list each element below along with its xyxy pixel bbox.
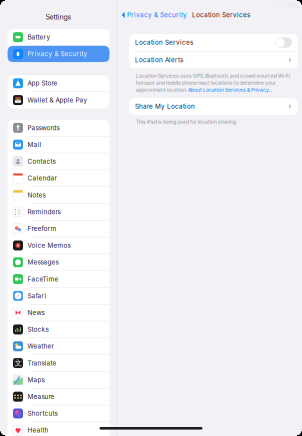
staticText: Notes (27, 191, 45, 199)
staticText: hotspot and mobile phone mast locations … (136, 80, 276, 86)
staticText: Translate (27, 359, 56, 367)
button[interactable]: App Store (7, 75, 109, 92)
button[interactable]: Location Alerts (129, 51, 298, 68)
button[interactable]: Contacts (7, 153, 109, 170)
staticText: Settings (45, 13, 71, 21)
button[interactable]: FaceTime (7, 271, 109, 288)
staticText: FaceTime (27, 275, 58, 283)
staticText: Passwords (27, 124, 59, 132)
button[interactable]: Measure (7, 388, 109, 405)
staticText: Mail (27, 141, 41, 148)
staticText: Voice Memos (27, 242, 70, 249)
staticText: Share My Location (135, 103, 195, 110)
button[interactable]: 文 (7, 355, 109, 372)
staticText: Battery (27, 33, 50, 41)
staticText: approximate location. (136, 87, 188, 93)
staticText: 文 (14, 358, 21, 368)
button[interactable]: About Location Services & Privacy… (188, 87, 272, 93)
staticText: App Store (27, 79, 57, 87)
staticText: Maps (27, 376, 44, 384)
button[interactable]: Privacy & Security (7, 46, 109, 63)
button[interactable]: Calendar (7, 170, 109, 187)
button[interactable]: Passwords (7, 120, 109, 136)
staticText: Weather (27, 342, 53, 350)
button[interactable]: Mail (7, 136, 109, 153)
staticText: Measure (27, 393, 54, 400)
button[interactable]: Stocks (7, 321, 109, 338)
button[interactable]: Privacy & Security (121, 11, 187, 19)
button[interactable]: Notes (7, 187, 109, 204)
staticText: Safari (27, 292, 46, 300)
staticText: Location Services uses GPS, Bluetooth, a… (136, 73, 290, 79)
staticText: Location Services (192, 11, 250, 19)
staticText: Reminders (27, 208, 60, 216)
staticText: Stocks (27, 326, 48, 333)
button[interactable]: Health (7, 422, 109, 436)
staticText: Contacts (27, 158, 55, 165)
button[interactable]: Reminders (7, 204, 109, 220)
button[interactable]: Shortcuts (7, 405, 109, 422)
button[interactable]: Messages (7, 254, 109, 271)
button[interactable]: News (7, 304, 109, 321)
button[interactable]: Weather (7, 338, 109, 355)
button[interactable]: Wallet & Apple Pay (7, 92, 109, 109)
button[interactable]: Voice Memos (7, 237, 109, 254)
button[interactable]: Share My Location (129, 98, 298, 115)
staticText: About Location Services & Privacy… (188, 87, 272, 93)
staticText: Privacy & Security (127, 11, 187, 19)
button[interactable]: Safari (7, 288, 109, 304)
staticText: News (27, 309, 44, 316)
staticText: Health (27, 426, 48, 434)
button[interactable]: Maps (7, 372, 109, 388)
staticText: Shortcuts (27, 410, 57, 417)
button[interactable]: Freeform (7, 220, 109, 237)
staticText: Privacy & Security (27, 50, 87, 58)
staticText: Freeform (27, 225, 56, 232)
staticText: Wallet & Apple Pay (27, 96, 87, 104)
staticText: Location Alerts (135, 56, 183, 64)
staticText: Calendar (27, 174, 56, 182)
staticText: Messages (27, 258, 58, 266)
button[interactable]: Location Services (129, 34, 298, 51)
button[interactable]: Battery (7, 29, 109, 46)
staticText: Location Services (135, 39, 193, 46)
staticText: This iPad is being used for location sha… (136, 119, 237, 125)
